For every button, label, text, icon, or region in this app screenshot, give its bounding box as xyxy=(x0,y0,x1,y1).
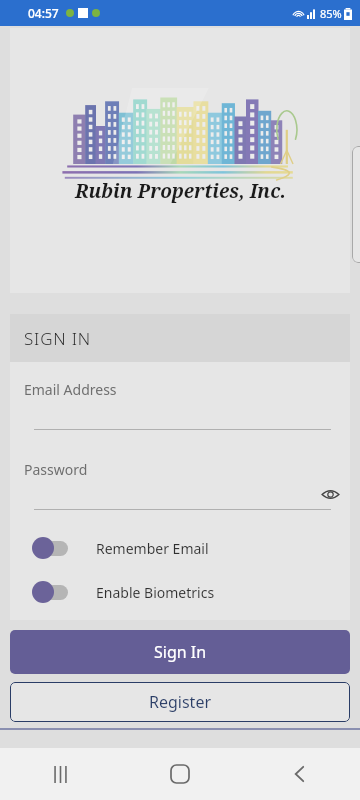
staticText: Email Address xyxy=(24,380,117,399)
button[interactable]: Recents xyxy=(34,748,86,800)
button[interactable]: Show password xyxy=(316,480,344,508)
button[interactable]: Register xyxy=(10,682,350,722)
button[interactable]: Remember Email xyxy=(32,536,350,560)
button[interactable]: Back xyxy=(274,748,326,800)
button[interactable]: Home xyxy=(154,748,206,800)
staticText: 04:57 xyxy=(28,5,59,21)
staticText: Rubin Properties, Inc. xyxy=(75,178,286,204)
staticText: 85% xyxy=(320,6,342,21)
staticText: Enable Biometrics xyxy=(96,583,215,602)
button[interactable]: Sign In xyxy=(10,630,350,674)
button[interactable]: Enable Biometrics xyxy=(32,580,350,604)
staticText: Remember Email xyxy=(96,539,209,558)
staticText: Register xyxy=(149,691,212,713)
staticText: Password xyxy=(24,460,88,479)
staticText: SIGN IN xyxy=(24,327,91,350)
staticText: Sign In xyxy=(154,641,207,663)
